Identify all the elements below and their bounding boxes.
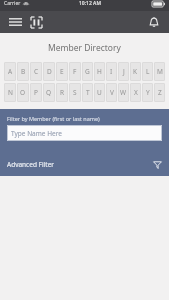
staticText: Type Name Here [11, 129, 62, 138]
button[interactable]: Type Name Here [7, 125, 162, 141]
staticText: B [21, 67, 26, 76]
staticText: T [86, 88, 90, 97]
button[interactable]: G [82, 62, 93, 81]
button[interactable]: H [94, 62, 105, 81]
button[interactable]: E [56, 62, 68, 81]
staticText: K [133, 67, 138, 76]
staticText: E [60, 67, 64, 76]
staticText: J [123, 67, 125, 76]
button[interactable]: O [17, 83, 29, 102]
button[interactable]: F [69, 62, 81, 81]
button[interactable]: C [30, 62, 42, 81]
button[interactable]: V [106, 83, 117, 102]
button[interactable]: I [106, 62, 117, 81]
staticText: P [34, 88, 38, 97]
button[interactable]: Y [142, 83, 153, 102]
staticText: I [110, 67, 113, 76]
staticText: G [85, 67, 90, 76]
button[interactable]: U [94, 83, 105, 102]
button[interactable]: N [4, 83, 16, 102]
button[interactable]: M [154, 62, 165, 81]
button[interactable]: X [130, 83, 141, 102]
button[interactable]: Q [43, 83, 55, 102]
staticText: Member Directory [48, 42, 121, 54]
staticText: W [120, 88, 127, 97]
button[interactable]: L [142, 62, 153, 81]
button[interactable]: Notifications [144, 12, 164, 32]
staticText: M [157, 67, 163, 76]
staticText: O [20, 88, 26, 97]
staticText: C [34, 67, 39, 76]
button[interactable]: B [17, 62, 29, 81]
staticText: N [8, 88, 13, 97]
button[interactable]: K [130, 62, 141, 81]
staticText: Carrier [4, 0, 21, 7]
button[interactable]: D [43, 62, 55, 81]
staticText: S [73, 88, 77, 97]
button[interactable]: Menu [5, 12, 25, 32]
staticText: Y [146, 88, 150, 97]
staticText: F [73, 67, 77, 76]
staticText: V [110, 88, 114, 97]
button[interactable]: Scan code [25, 11, 47, 33]
button[interactable]: S [69, 83, 81, 102]
staticText: Z [158, 88, 162, 97]
button[interactable]: T [82, 83, 93, 102]
staticText: R [60, 88, 65, 97]
button[interactable]: W [118, 83, 129, 102]
staticText: U [97, 88, 102, 97]
staticText: L [146, 67, 150, 76]
button[interactable]: A [4, 62, 16, 81]
staticText: H [97, 67, 102, 76]
staticText: A [8, 67, 13, 76]
staticText: D [47, 67, 52, 76]
staticText: X [134, 88, 138, 97]
button[interactable]: Advanced Filter [7, 154, 162, 174]
button[interactable]: P [30, 83, 42, 102]
button[interactable]: R [56, 83, 68, 102]
staticText: 10:12 AM [79, 0, 101, 7]
staticText: Advanced Filter [7, 160, 55, 169]
staticText: Filter by Member (first or last name) [7, 115, 100, 122]
button[interactable]: Z [154, 83, 165, 102]
staticText: Q [46, 88, 52, 97]
button[interactable]: J [118, 62, 129, 81]
